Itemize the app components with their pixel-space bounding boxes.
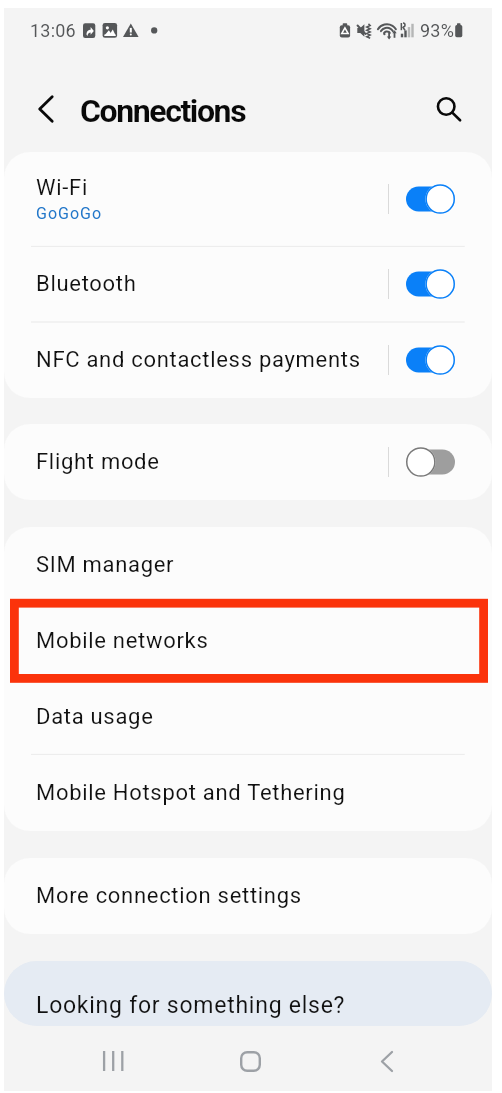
button[interactable]: On — [406, 269, 455, 299]
staticText: Flight mode — [36, 449, 160, 475]
button[interactable]: Home — [220, 1031, 280, 1091]
button[interactable]: Search — [420, 83, 472, 135]
button[interactable]: Mobile networks — [4, 603, 492, 679]
button[interactable]: Bluetooth — [4, 246, 492, 322]
staticText: 93% — [420, 20, 455, 41]
button[interactable]: Wi-Fi — [4, 152, 492, 246]
button[interactable]: Navigate up — [24, 83, 76, 135]
button[interactable]: SIM manager — [4, 527, 492, 603]
button[interactable]: Flight mode — [4, 424, 492, 500]
staticText: Looking for something else? — [36, 992, 346, 1019]
staticText: Mobile networks — [36, 628, 209, 654]
button[interactable]: NFC and contactless payments — [4, 322, 492, 398]
staticText: Mobile Hotspot and Tethering — [36, 780, 346, 806]
staticText: 13:06 — [30, 20, 76, 41]
button[interactable]: Off — [406, 447, 455, 477]
button[interactable]: More connection settings — [4, 858, 492, 934]
button[interactable]: Mobile Hotspot and Tethering — [4, 755, 492, 831]
button[interactable]: Looking for something else? — [4, 961, 492, 1026]
staticText: SIM manager — [36, 552, 175, 578]
button[interactable]: On — [406, 184, 455, 214]
staticText: Connections — [80, 92, 246, 130]
button[interactable]: Data usage — [4, 679, 492, 755]
button[interactable]: On — [406, 345, 455, 375]
staticText: Bluetooth — [36, 271, 137, 297]
button[interactable]: Recent apps — [83, 1031, 143, 1091]
staticText: GoGoGo — [36, 204, 103, 223]
staticText: Wi-Fi — [36, 175, 88, 201]
button[interactable]: Back — [357, 1031, 417, 1091]
staticText: NFC and contactless payments — [36, 347, 361, 373]
staticText: More connection settings — [36, 883, 302, 909]
staticText: Data usage — [36, 704, 154, 730]
